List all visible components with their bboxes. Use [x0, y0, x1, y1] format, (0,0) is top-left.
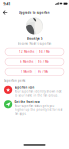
- button[interactable]: 1 Month: [5, 68, 64, 75]
- staticText: Your superfan identity shown next to you…: [15, 90, 62, 97]
- staticText: 1 Month: [20, 70, 32, 73]
- staticText: |: [33, 60, 38, 63]
- staticText: $4 / Mo: [39, 50, 50, 53]
- staticText: |: [32, 70, 37, 73]
- staticText: Superfan icon: [15, 86, 35, 89]
- button[interactable]: 6 Months: [5, 58, 64, 65]
- staticText: Upgrade to superfan: [19, 11, 50, 14]
- staticText: Get the front row: [15, 100, 40, 104]
- staticText: 6 Months: [20, 60, 33, 63]
- staticText: Become Noah's superfan: [17, 42, 51, 45]
- button[interactable]: 12 Months: [5, 48, 64, 55]
- staticText: 12 Months: [19, 50, 34, 53]
- staticText: Brooklyn S: [27, 37, 42, 40]
- button[interactable]: Back: [1, 8, 9, 17]
- staticText: $6 / Mo: [37, 70, 48, 73]
- staticText: Your superfan status gets you higher up …: [15, 104, 63, 115]
- staticText: 9:41: [3, 1, 10, 6]
- staticText: $5 / Mo: [38, 60, 49, 63]
- staticText: Superfan perks: [4, 79, 25, 82]
- staticText: |: [34, 50, 39, 53]
